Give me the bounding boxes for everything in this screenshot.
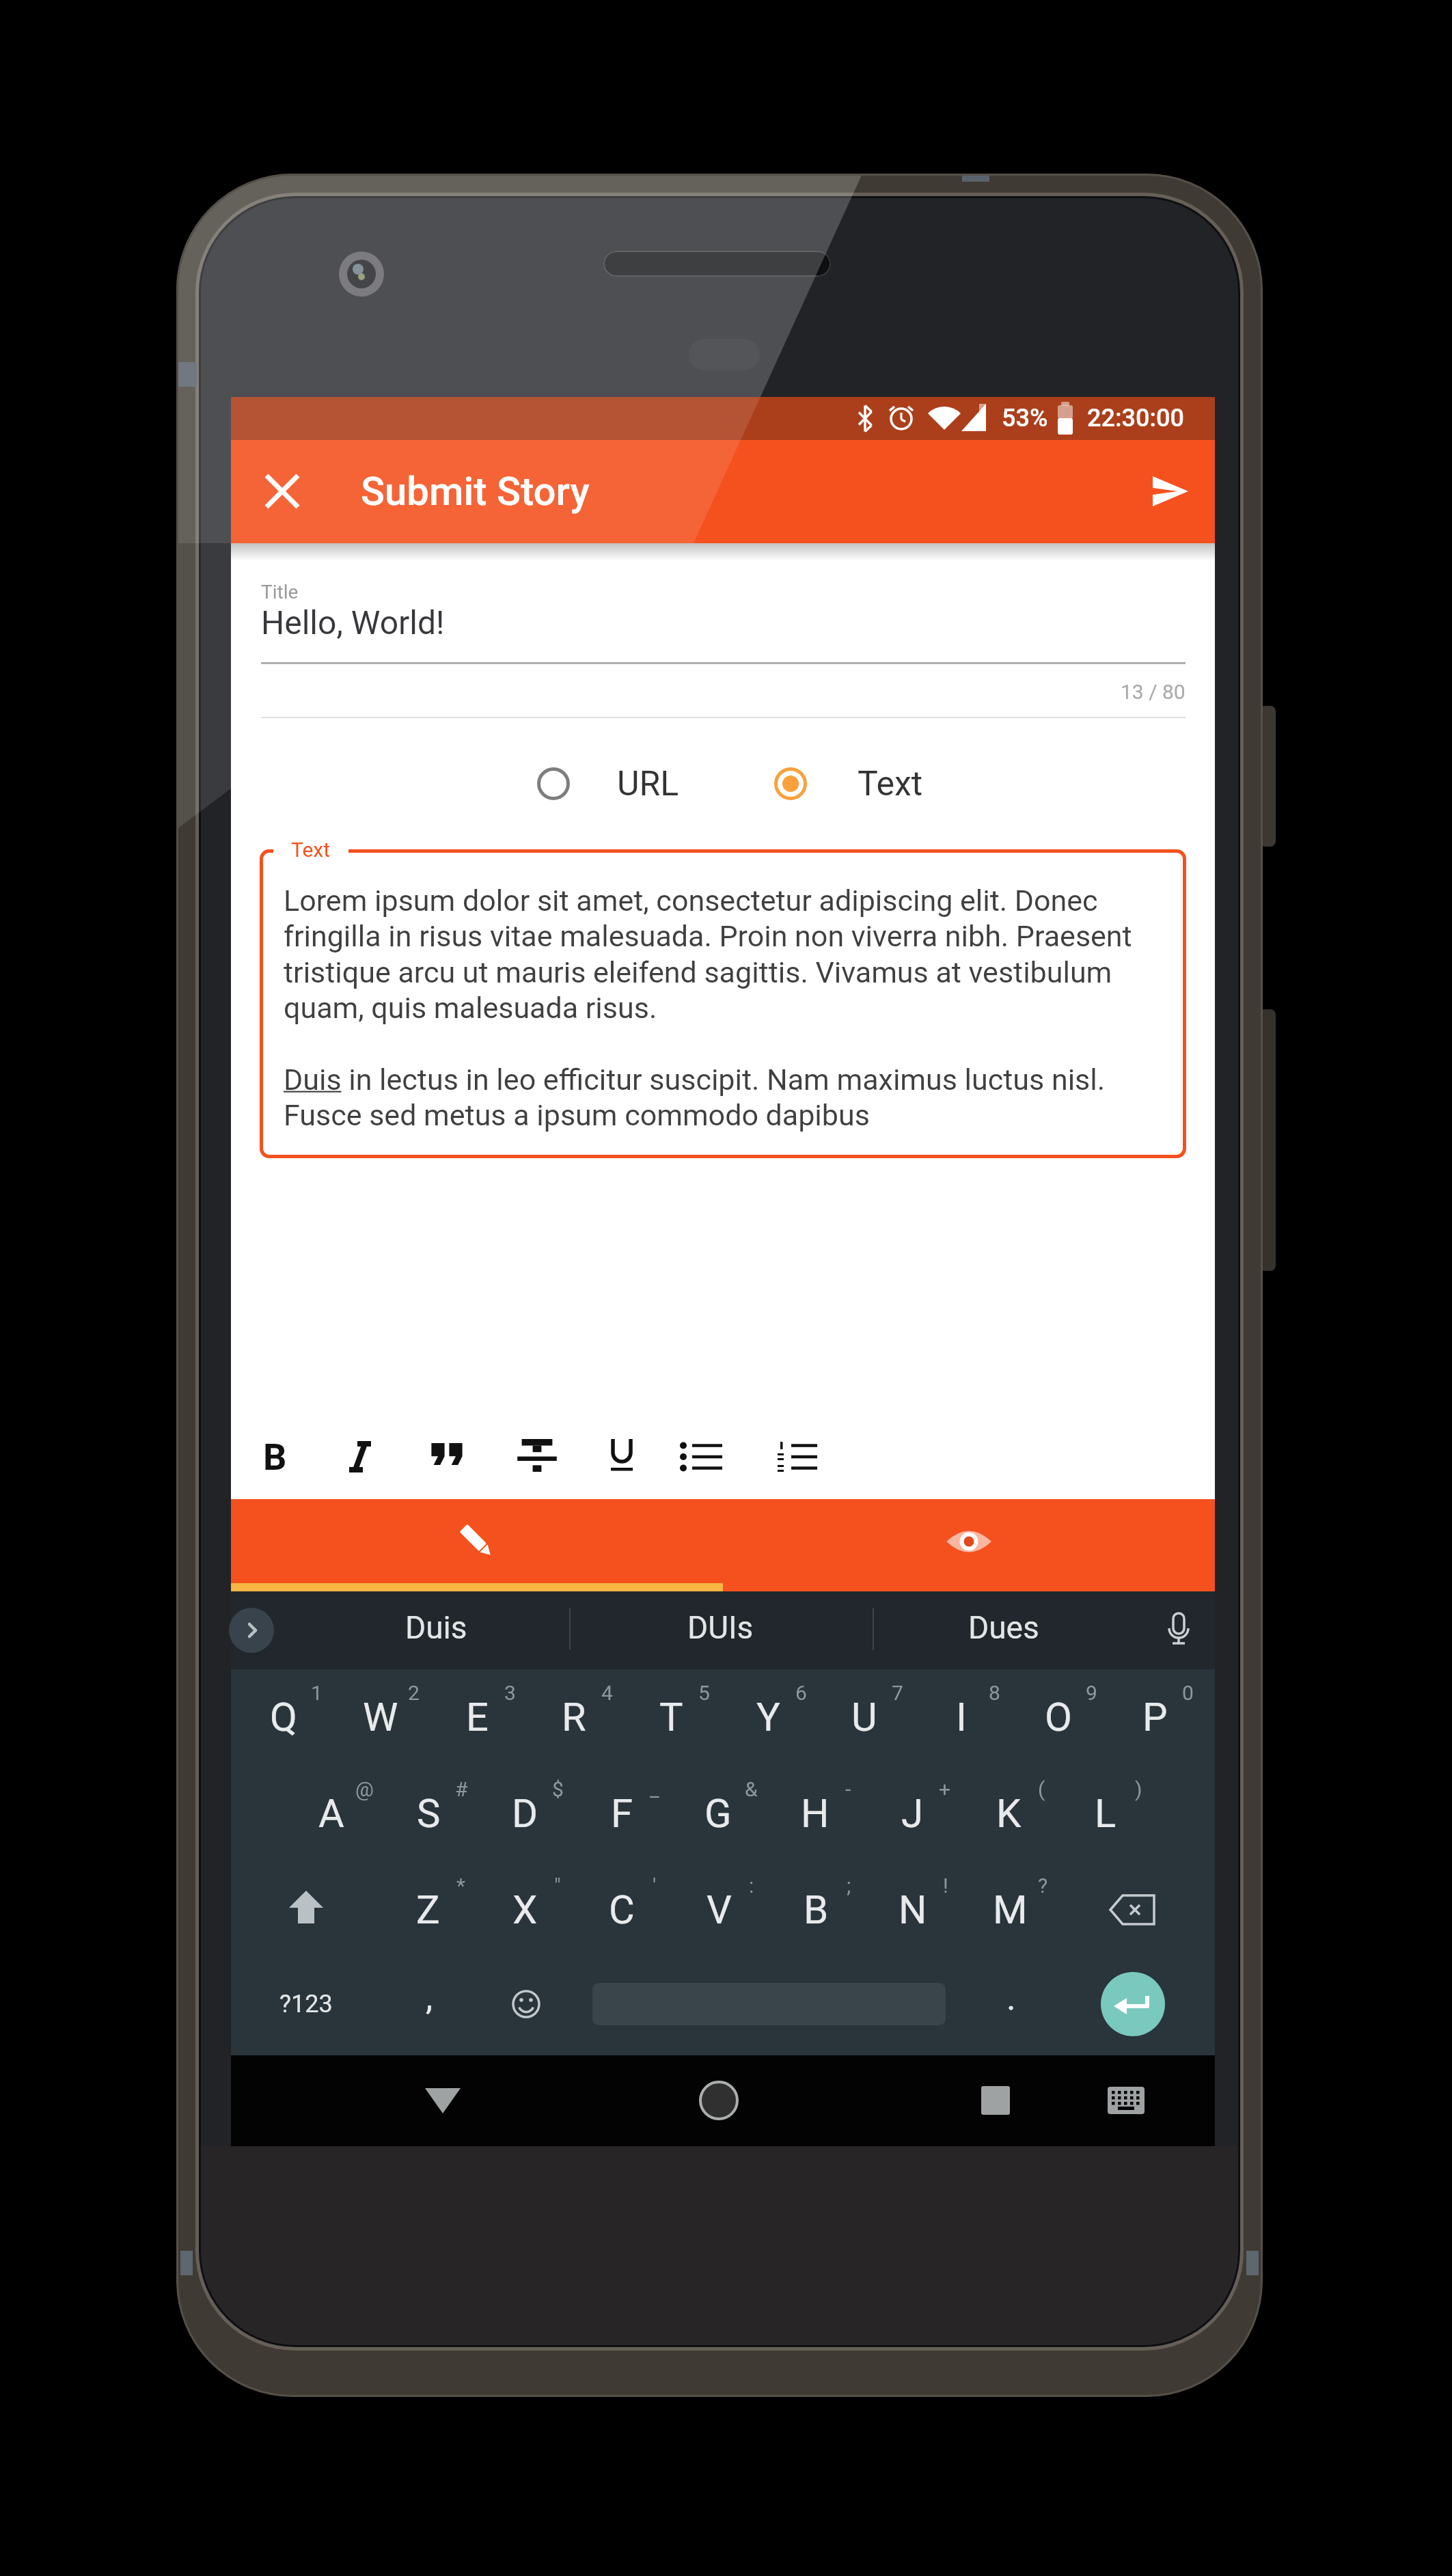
button[interactable]: U — [817, 1669, 912, 1765]
button[interactable]: S — [381, 1766, 476, 1861]
staticText: M — [993, 1887, 1028, 1933]
staticText: C — [609, 1887, 635, 1933]
staticText: 5 — [698, 1681, 710, 1705]
button[interactable]: F — [574, 1766, 670, 1861]
staticText: ! — [943, 1874, 948, 1897]
button[interactable] — [773, 766, 808, 801]
button[interactable]: L — [1058, 1766, 1153, 1861]
staticText: G — [704, 1790, 732, 1837]
button[interactable]: B — [241, 1423, 309, 1491]
button[interactable] — [981, 2086, 1010, 2115]
button[interactable] — [260, 849, 1186, 1158]
button[interactable] — [588, 1423, 656, 1491]
button[interactable] — [229, 1608, 274, 1653]
staticText: B — [804, 1887, 829, 1933]
button[interactable] — [503, 1423, 571, 1491]
button[interactable]: Y — [720, 1669, 816, 1765]
staticText: 3 — [504, 1681, 516, 1705]
button[interactable]: W — [333, 1669, 428, 1765]
staticText: 4 — [601, 1681, 613, 1705]
staticText: S — [417, 1790, 441, 1837]
button[interactable]: M — [962, 1862, 1058, 1958]
button[interactable] — [1101, 1972, 1165, 2036]
button[interactable] — [668, 1423, 737, 1491]
staticText: . — [1006, 1977, 1016, 2018]
button[interactable]: , — [395, 1956, 463, 2038]
staticText: , — [426, 1977, 433, 2018]
button[interactable]: Duis — [306, 1593, 566, 1662]
button[interactable]: ?123 — [255, 1963, 357, 2045]
staticText: 53% — [1002, 404, 1048, 433]
staticText: - — [845, 1777, 851, 1801]
button[interactable]: A — [284, 1766, 379, 1861]
staticText: Z — [416, 1887, 440, 1933]
button[interactable]: G — [670, 1766, 766, 1861]
button[interactable] — [763, 1423, 831, 1491]
staticText: Q — [270, 1694, 297, 1740]
staticText: Title — [261, 581, 299, 603]
staticText: ' — [653, 1874, 657, 1897]
staticText: 9 — [1086, 1681, 1097, 1705]
staticText: D — [512, 1790, 538, 1837]
button[interactable]: E — [429, 1669, 525, 1765]
button[interactable]: Dues — [874, 1593, 1134, 1662]
button[interactable] — [1160, 1612, 1197, 1650]
staticText: Dues — [968, 1609, 1039, 1646]
staticText: U — [851, 1694, 877, 1740]
button[interactable] — [326, 1423, 394, 1491]
staticText: W — [363, 1694, 398, 1740]
staticText: T — [659, 1694, 683, 1740]
button[interactable]: P — [1107, 1669, 1203, 1765]
button[interactable]: R — [526, 1669, 622, 1765]
staticText: : — [749, 1874, 754, 1897]
button[interactable] — [723, 1499, 1215, 1583]
button[interactable] — [248, 457, 316, 525]
button[interactable] — [536, 766, 571, 801]
button[interactable] — [698, 2080, 739, 2121]
button[interactable]: I — [914, 1669, 1009, 1765]
button[interactable]: Q — [236, 1669, 331, 1765]
button[interactable] — [413, 1423, 481, 1491]
button[interactable]: C — [574, 1862, 670, 1958]
button[interactable]: X — [477, 1862, 573, 1958]
button[interactable] — [1108, 2087, 1145, 2114]
staticText: A — [318, 1790, 344, 1837]
button[interactable]: K — [961, 1766, 1056, 1861]
button[interactable]: H — [767, 1766, 863, 1861]
staticText: tristique arcu ut mauris eleifend sagitt… — [284, 955, 1112, 989]
button[interactable] — [1129, 450, 1211, 532]
staticText: 13 / 80 — [1121, 680, 1186, 704]
staticText: ? — [1038, 1874, 1048, 1897]
button[interactable] — [251, 564, 1194, 666]
button[interactable]: . — [977, 1956, 1045, 2038]
staticText: DUIs — [687, 1609, 754, 1646]
button[interactable]: T — [623, 1669, 719, 1765]
button[interactable] — [478, 1956, 574, 2052]
staticText: 2 — [408, 1681, 420, 1705]
button[interactable]: D — [477, 1766, 573, 1861]
button[interactable] — [258, 1862, 354, 1958]
staticText: I — [956, 1694, 967, 1740]
button[interactable]: J — [864, 1766, 960, 1861]
button[interactable]: B — [768, 1862, 864, 1958]
button[interactable]: O — [1011, 1669, 1106, 1765]
staticText: F — [611, 1790, 633, 1837]
staticText: quam, quis malesuada risus. — [284, 991, 657, 1025]
staticText: O — [1045, 1694, 1072, 1740]
button[interactable] — [424, 2081, 462, 2120]
staticText: Text — [858, 764, 923, 804]
button[interactable] — [1085, 1862, 1181, 1958]
staticText: Lorem ipsum dolor sit amet, consectetur … — [284, 883, 1098, 918]
staticText: @ — [355, 1777, 374, 1801]
button[interactable] — [231, 1499, 723, 1583]
button[interactable]: Z — [380, 1862, 476, 1958]
staticText: P — [1142, 1694, 1168, 1740]
staticText: L — [1095, 1790, 1117, 1837]
staticText: J — [901, 1790, 924, 1837]
button[interactable]: V — [671, 1862, 767, 1958]
button[interactable]: DUIs — [590, 1593, 850, 1662]
button[interactable]: N — [865, 1862, 961, 1958]
staticText: E — [466, 1694, 489, 1740]
staticText: ( — [1038, 1777, 1045, 1801]
